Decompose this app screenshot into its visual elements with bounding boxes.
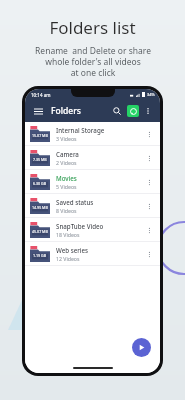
staticText: Web series (56, 246, 89, 254)
staticText: Folders list (49, 16, 136, 39)
staticText: SnapTube Video (56, 222, 104, 230)
staticText: 15.07 MB (32, 133, 48, 138)
button[interactable]: Open navigation menu (31, 104, 45, 118)
staticText: 18 Videos (56, 231, 80, 238)
button[interactable]: WhatsApp status videos (127, 105, 139, 117)
staticText: 7.35 MB (33, 157, 47, 162)
button[interactable]: 45.07 MB (25, 218, 160, 242)
staticText: 8 Videos (56, 207, 77, 214)
button[interactable]: Folder options (143, 224, 155, 236)
staticText: Movies (56, 174, 77, 182)
button[interactable]: Folder options (143, 128, 155, 140)
staticText: 2 Videos (56, 159, 77, 166)
button[interactable]: Folder options (143, 176, 155, 188)
staticText: Saved status (56, 198, 94, 206)
staticText: 14.95 MB (32, 205, 48, 210)
staticText: 34% (147, 92, 155, 97)
staticText: 12 Videos (56, 255, 80, 262)
button[interactable]: Folder options (143, 248, 155, 260)
button[interactable]: Search (110, 104, 124, 118)
button[interactable]: Play all videos (132, 338, 151, 357)
staticText: Internal Storage (56, 126, 105, 134)
button[interactable]: 6.30 GB (25, 170, 160, 194)
staticText: Folders (51, 105, 81, 117)
staticText: 5 Videos (56, 183, 77, 190)
button[interactable]: Folder options (143, 152, 155, 164)
button[interactable]: 15.07 MB (25, 122, 160, 146)
button[interactable]: Folder options (143, 200, 155, 212)
button[interactable]: 14.95 MB (25, 194, 160, 218)
staticText: Rename and Delete or share whole folder'… (35, 45, 151, 78)
button[interactable]: More options (142, 105, 154, 117)
staticText: 10:14 am (31, 92, 51, 98)
staticText: 1.19 GB (33, 253, 47, 258)
staticText: 3 Videos (56, 135, 77, 142)
button[interactable]: 1.19 GB (25, 242, 160, 266)
staticText: 6.30 GB (33, 181, 47, 186)
staticText: Camera (56, 150, 79, 158)
button[interactable]: 7.35 MB (25, 146, 160, 170)
staticText: 45.07 MB (32, 229, 48, 234)
